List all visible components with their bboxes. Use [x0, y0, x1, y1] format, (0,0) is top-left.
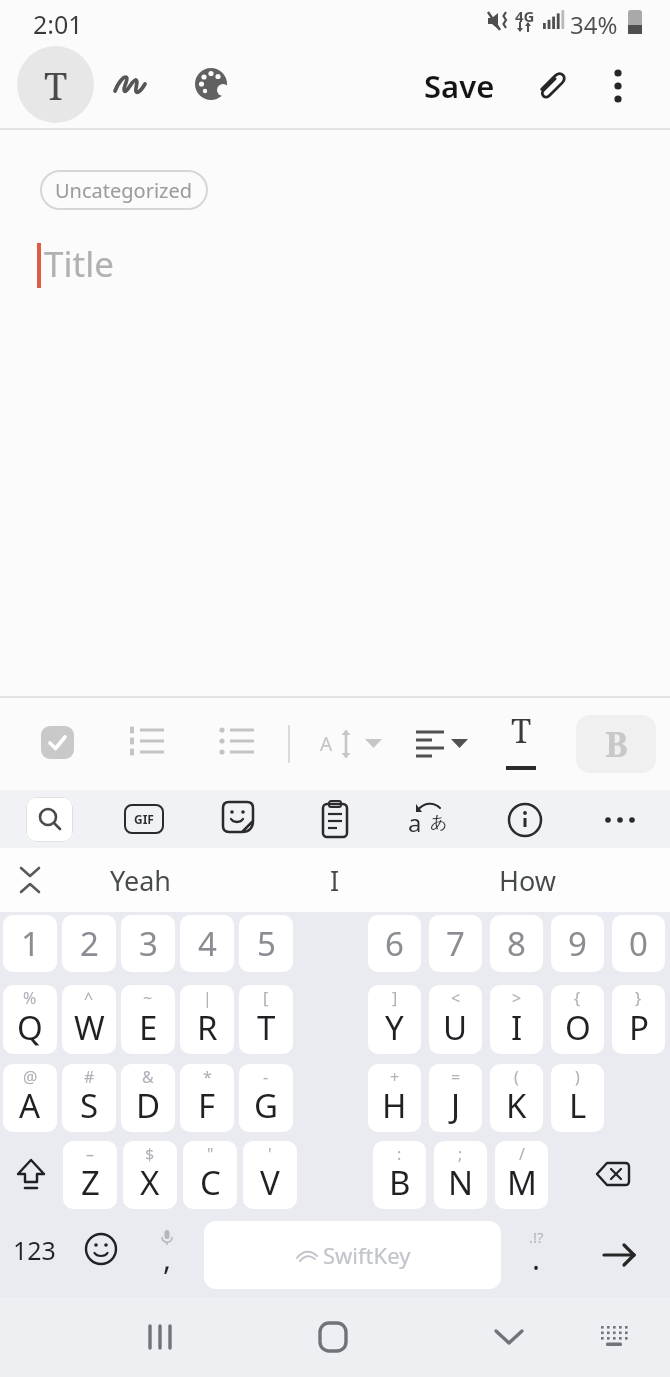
button[interactable]: ]	[368, 985, 421, 1054]
button[interactable]: 4	[180, 915, 234, 972]
button[interactable]: ~	[121, 985, 175, 1054]
button[interactable]: a	[406, 798, 454, 842]
button[interactable]	[217, 722, 259, 764]
button[interactable]	[408, 720, 474, 768]
staticText: A	[320, 731, 333, 757]
button[interactable]: <	[429, 985, 482, 1054]
button[interactable]: How	[460, 848, 596, 912]
staticText: X	[140, 1160, 160, 1205]
staticText: B	[605, 721, 628, 767]
button[interactable]: T	[17, 46, 94, 123]
staticText: E	[139, 1005, 158, 1050]
button[interactable]	[584, 1307, 644, 1367]
staticText: W	[74, 1005, 105, 1050]
staticText: L	[569, 1083, 587, 1128]
button[interactable]: @	[3, 1064, 57, 1132]
button[interactable]	[595, 56, 641, 116]
staticText: #	[84, 1066, 95, 1088]
button[interactable]	[108, 60, 156, 108]
button[interactable]: '	[243, 1141, 297, 1209]
staticText: Title	[44, 240, 114, 288]
button[interactable]: SwiftKey	[204, 1221, 501, 1289]
button[interactable]: ^	[62, 985, 116, 1054]
button[interactable]: 1	[3, 915, 57, 972]
staticText: K	[506, 1083, 527, 1128]
button[interactable]: A	[316, 720, 390, 768]
button[interactable]	[74, 1215, 128, 1283]
button[interactable]: {	[551, 985, 604, 1054]
button[interactable]: +	[368, 1064, 421, 1132]
button[interactable]	[26, 797, 73, 842]
button[interactable]: –	[63, 1141, 117, 1209]
staticText: あ	[430, 812, 448, 833]
button[interactable]	[479, 1307, 539, 1367]
button[interactable]: [	[239, 985, 293, 1054]
button[interactable]	[10, 860, 50, 900]
button[interactable]: Uncategorized	[40, 170, 208, 210]
button[interactable]: =	[429, 1064, 482, 1132]
button[interactable]: GIF	[122, 802, 166, 836]
button[interactable]	[312, 797, 358, 843]
button[interactable]: }	[612, 985, 665, 1054]
button[interactable]: I	[290, 848, 380, 912]
button[interactable]	[130, 1307, 190, 1367]
button[interactable]: Save	[412, 56, 507, 116]
staticText: T	[44, 59, 68, 111]
button[interactable]	[217, 796, 263, 842]
button[interactable]	[585, 1147, 641, 1203]
button[interactable]: Yeah	[70, 848, 210, 912]
button[interactable]: 7	[429, 915, 482, 972]
button[interactable]: $	[123, 1141, 177, 1209]
button[interactable]: 123	[6, 1221, 62, 1289]
staticText: $	[145, 1143, 155, 1165]
staticText: <	[451, 987, 461, 1009]
button[interactable]: 8	[490, 915, 543, 972]
button[interactable]	[188, 60, 236, 108]
staticText: G	[254, 1083, 279, 1128]
button[interactable]: |	[180, 985, 234, 1054]
button[interactable]: 2	[62, 915, 116, 972]
button[interactable]: /	[495, 1141, 548, 1209]
button[interactable]	[303, 1307, 363, 1367]
button[interactable]	[598, 798, 642, 842]
button[interactable]: #	[62, 1064, 116, 1132]
staticText: Save	[424, 65, 495, 107]
staticText: N	[448, 1160, 474, 1205]
button[interactable]: "	[183, 1141, 237, 1209]
staticText: Uncategorized	[55, 177, 193, 204]
staticText: 3	[139, 921, 158, 966]
staticText: ,	[163, 1238, 172, 1279]
button[interactable]: .!?	[509, 1221, 563, 1289]
staticText: Yeah	[110, 862, 171, 899]
button[interactable]: 6	[368, 915, 421, 972]
staticText: +	[390, 1066, 400, 1088]
button[interactable]: ;	[434, 1141, 487, 1209]
button[interactable]: 3	[121, 915, 175, 972]
button[interactable]: ,	[140, 1221, 194, 1289]
button[interactable]	[41, 726, 74, 759]
button[interactable]: )	[551, 1064, 604, 1132]
staticText: :	[397, 1143, 402, 1165]
staticText: 9	[568, 921, 587, 966]
button[interactable]: &	[121, 1064, 175, 1132]
button[interactable]	[592, 1221, 648, 1289]
staticText: O	[565, 1005, 591, 1050]
button[interactable]: %	[3, 985, 57, 1054]
staticText: .!?	[529, 1227, 544, 1247]
button[interactable]: -	[239, 1064, 293, 1132]
button[interactable]: 5	[239, 915, 293, 972]
button[interactable]: 9	[551, 915, 604, 972]
button[interactable]: B	[576, 715, 656, 773]
button[interactable]: *	[180, 1064, 234, 1132]
button[interactable]: (	[490, 1064, 543, 1132]
button[interactable]: 0	[612, 915, 665, 972]
button[interactable]	[528, 60, 578, 110]
staticText: &	[142, 1066, 154, 1088]
button[interactable]: :	[373, 1141, 426, 1209]
staticText: I	[511, 1005, 523, 1050]
button[interactable]: T	[496, 708, 546, 770]
button[interactable]	[503, 798, 547, 842]
button[interactable]: >	[490, 985, 543, 1054]
button[interactable]	[8, 1147, 54, 1203]
button[interactable]	[127, 722, 169, 764]
